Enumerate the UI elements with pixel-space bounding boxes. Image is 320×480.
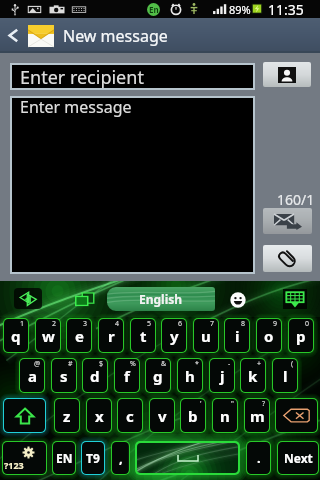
- button[interactable]: c: [118, 399, 142, 432]
- staticText: j: [220, 366, 225, 386]
- staticText: t: [140, 326, 147, 346]
- staticText: k: [248, 366, 258, 386]
- button[interactable]: Backspace: [276, 399, 317, 432]
- button[interactable]: Contacts: [263, 62, 311, 87]
- button[interactable]: Hide keyboard: [280, 287, 310, 311]
- staticText: m: [250, 406, 265, 426]
- staticText: ": [231, 399, 234, 409]
- staticText: o: [264, 326, 274, 346]
- button[interactable]: n: [213, 399, 237, 432]
- staticText: y: [170, 326, 179, 346]
- button[interactable]: Enter message: [12, 98, 253, 272]
- button[interactable]: EN: [53, 442, 75, 474]
- staticText: 89%: [229, 2, 251, 17]
- button[interactable]: Next: [278, 442, 318, 474]
- button[interactable]: v: [150, 399, 174, 432]
- button[interactable]: f: [115, 359, 139, 392]
- staticText: s: [60, 366, 68, 386]
- button[interactable]: ,: [112, 442, 129, 474]
- staticText: 1: [20, 319, 25, 329]
- staticText: @: [34, 359, 41, 369]
- staticText: w: [42, 326, 55, 346]
- button[interactable]: Voice input: [14, 288, 42, 309]
- button[interactable]: e: [67, 319, 91, 352]
- button[interactable]: .: [247, 442, 270, 474]
- button[interactable]: q: [4, 319, 28, 352]
- staticText: T9: [86, 450, 100, 466]
- button[interactable]: u: [194, 319, 218, 352]
- button[interactable]: Symbols: [3, 442, 46, 474]
- staticText: $: [99, 359, 104, 369]
- staticText: r: [108, 326, 115, 346]
- staticText: .: [257, 449, 261, 467]
- staticText: 160/1: [277, 190, 315, 209]
- staticText: New message: [63, 25, 168, 47]
- button[interactable]: o: [257, 319, 281, 352]
- staticText: Enter message: [20, 96, 132, 118]
- button[interactable]: m: [245, 399, 269, 432]
- staticText: Next: [284, 450, 313, 466]
- staticText: 0: [305, 319, 310, 329]
- button[interactable]: Shift: [4, 399, 45, 432]
- staticText: 4: [115, 319, 120, 329]
- staticText: e: [75, 326, 84, 346]
- staticText: 3: [83, 319, 88, 329]
- button[interactable]: i: [225, 319, 249, 352]
- button[interactable]: p: [289, 319, 313, 352]
- staticText: (: [291, 359, 294, 369]
- staticText: %: [130, 359, 136, 369]
- staticText: 7: [210, 319, 215, 329]
- button[interactable]: g: [146, 359, 170, 392]
- button[interactable]: y: [162, 319, 186, 352]
- staticText: q: [11, 326, 21, 346]
- button[interactable]: English: [107, 287, 215, 311]
- staticText: ?: [262, 399, 266, 409]
- button[interactable]: r: [99, 319, 123, 352]
- button[interactable]: k: [241, 359, 265, 392]
- staticText: x: [95, 406, 104, 426]
- button[interactable]: s: [52, 359, 76, 392]
- staticText: 8: [241, 319, 246, 329]
- button[interactable]: l: [273, 359, 297, 392]
- button[interactable]: d: [83, 359, 107, 392]
- staticText: 9: [273, 319, 278, 329]
- staticText: Enter recipient: [20, 65, 144, 88]
- staticText: p: [296, 326, 306, 346]
- staticText: English: [139, 291, 183, 307]
- button[interactable]: Back: [2, 18, 24, 53]
- staticText: En: [149, 4, 159, 15]
- button[interactable]: Space: [137, 443, 238, 473]
- staticText: v: [158, 406, 167, 426]
- staticText: 2: [52, 319, 57, 329]
- button[interactable]: h: [178, 359, 202, 392]
- button[interactable]: Send: [263, 208, 312, 234]
- staticText: *: [195, 359, 199, 369]
- staticText: z: [63, 406, 71, 426]
- button[interactable]: j: [210, 359, 234, 392]
- staticText: 6: [178, 319, 183, 329]
- staticText: -: [228, 359, 231, 369]
- staticText: 5: [147, 319, 152, 329]
- button[interactable]: a: [20, 359, 44, 392]
- button[interactable]: z: [55, 399, 79, 432]
- staticText: u: [201, 326, 211, 346]
- button[interactable]: T9: [82, 442, 104, 474]
- staticText: d: [90, 366, 100, 386]
- staticText: 11:35: [268, 0, 304, 18]
- button[interactable]: x: [87, 399, 111, 432]
- button[interactable]: t: [131, 319, 155, 352]
- staticText: l: [283, 366, 288, 386]
- staticText: EN: [56, 450, 73, 466]
- staticText: c: [126, 406, 134, 426]
- staticText: a: [28, 366, 37, 386]
- staticText: b: [188, 406, 198, 426]
- button[interactable]: Clipboard: [73, 292, 98, 308]
- button[interactable]: Enter recipient: [12, 65, 253, 88]
- button[interactable]: b: [181, 399, 205, 432]
- button[interactable]: Emoji: [229, 291, 246, 308]
- button[interactable]: Attach: [263, 245, 312, 272]
- button[interactable]: w: [36, 319, 60, 352]
- staticText: &: [161, 359, 167, 369]
- staticText: #: [68, 359, 73, 369]
- staticText: ': [200, 399, 202, 409]
